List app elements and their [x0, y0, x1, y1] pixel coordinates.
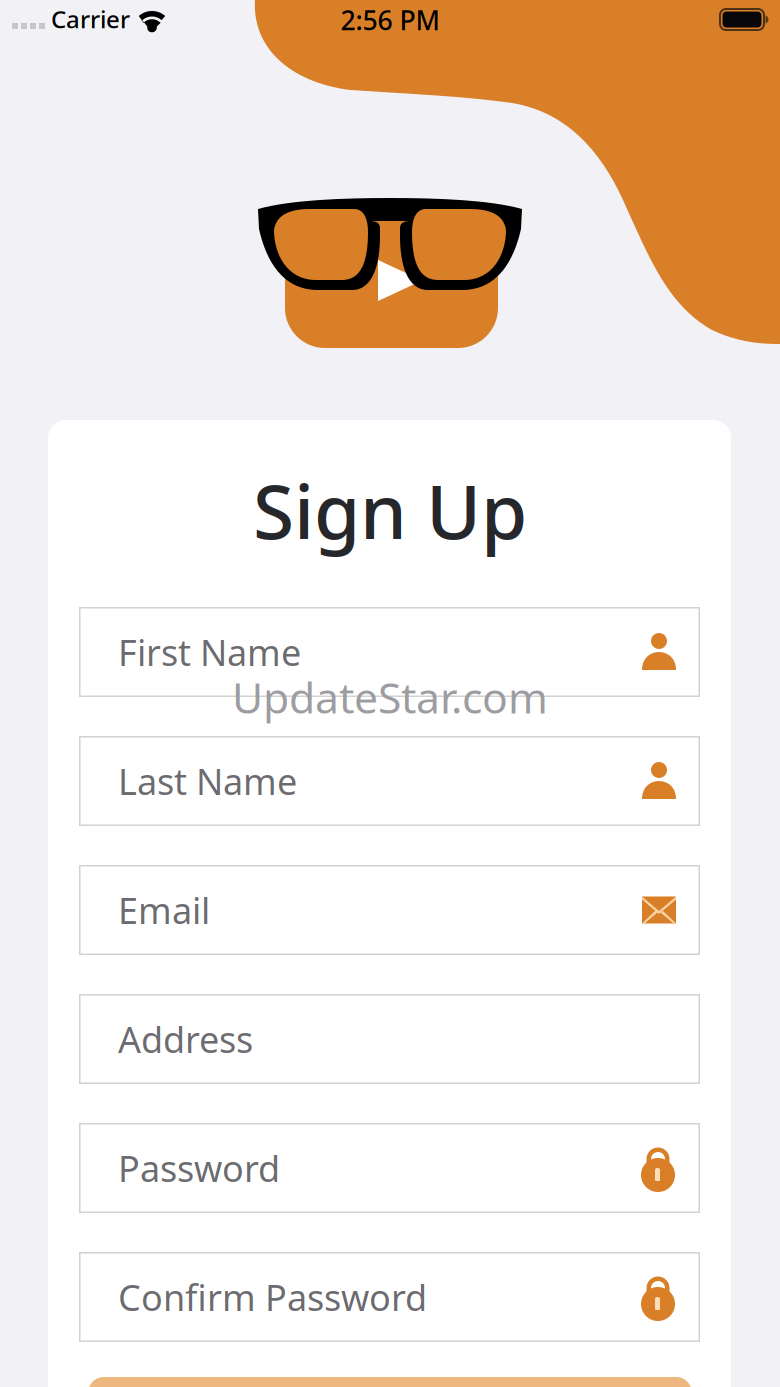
staticText: First Name	[118, 628, 301, 676]
staticText: Password	[118, 1144, 280, 1192]
staticText: Carrier	[51, 3, 130, 35]
button[interactable]: First Name	[79, 607, 700, 697]
staticText: UpdateStar.com	[232, 669, 548, 725]
button[interactable]: Address	[79, 994, 700, 1084]
staticText: Address	[118, 1015, 253, 1063]
staticText: 2:56 PM	[340, 2, 439, 38]
staticText: Confirm Password	[118, 1273, 427, 1321]
button[interactable]: Email	[79, 865, 700, 955]
staticText: Sign Up	[253, 460, 527, 560]
button[interactable]: Confirm Password	[79, 1252, 700, 1342]
staticText: Last Name	[118, 757, 297, 805]
button[interactable]	[88, 1377, 692, 1387]
button[interactable]: Password	[79, 1123, 700, 1213]
staticText: Email	[118, 886, 210, 934]
button[interactable]: Last Name	[79, 736, 700, 826]
